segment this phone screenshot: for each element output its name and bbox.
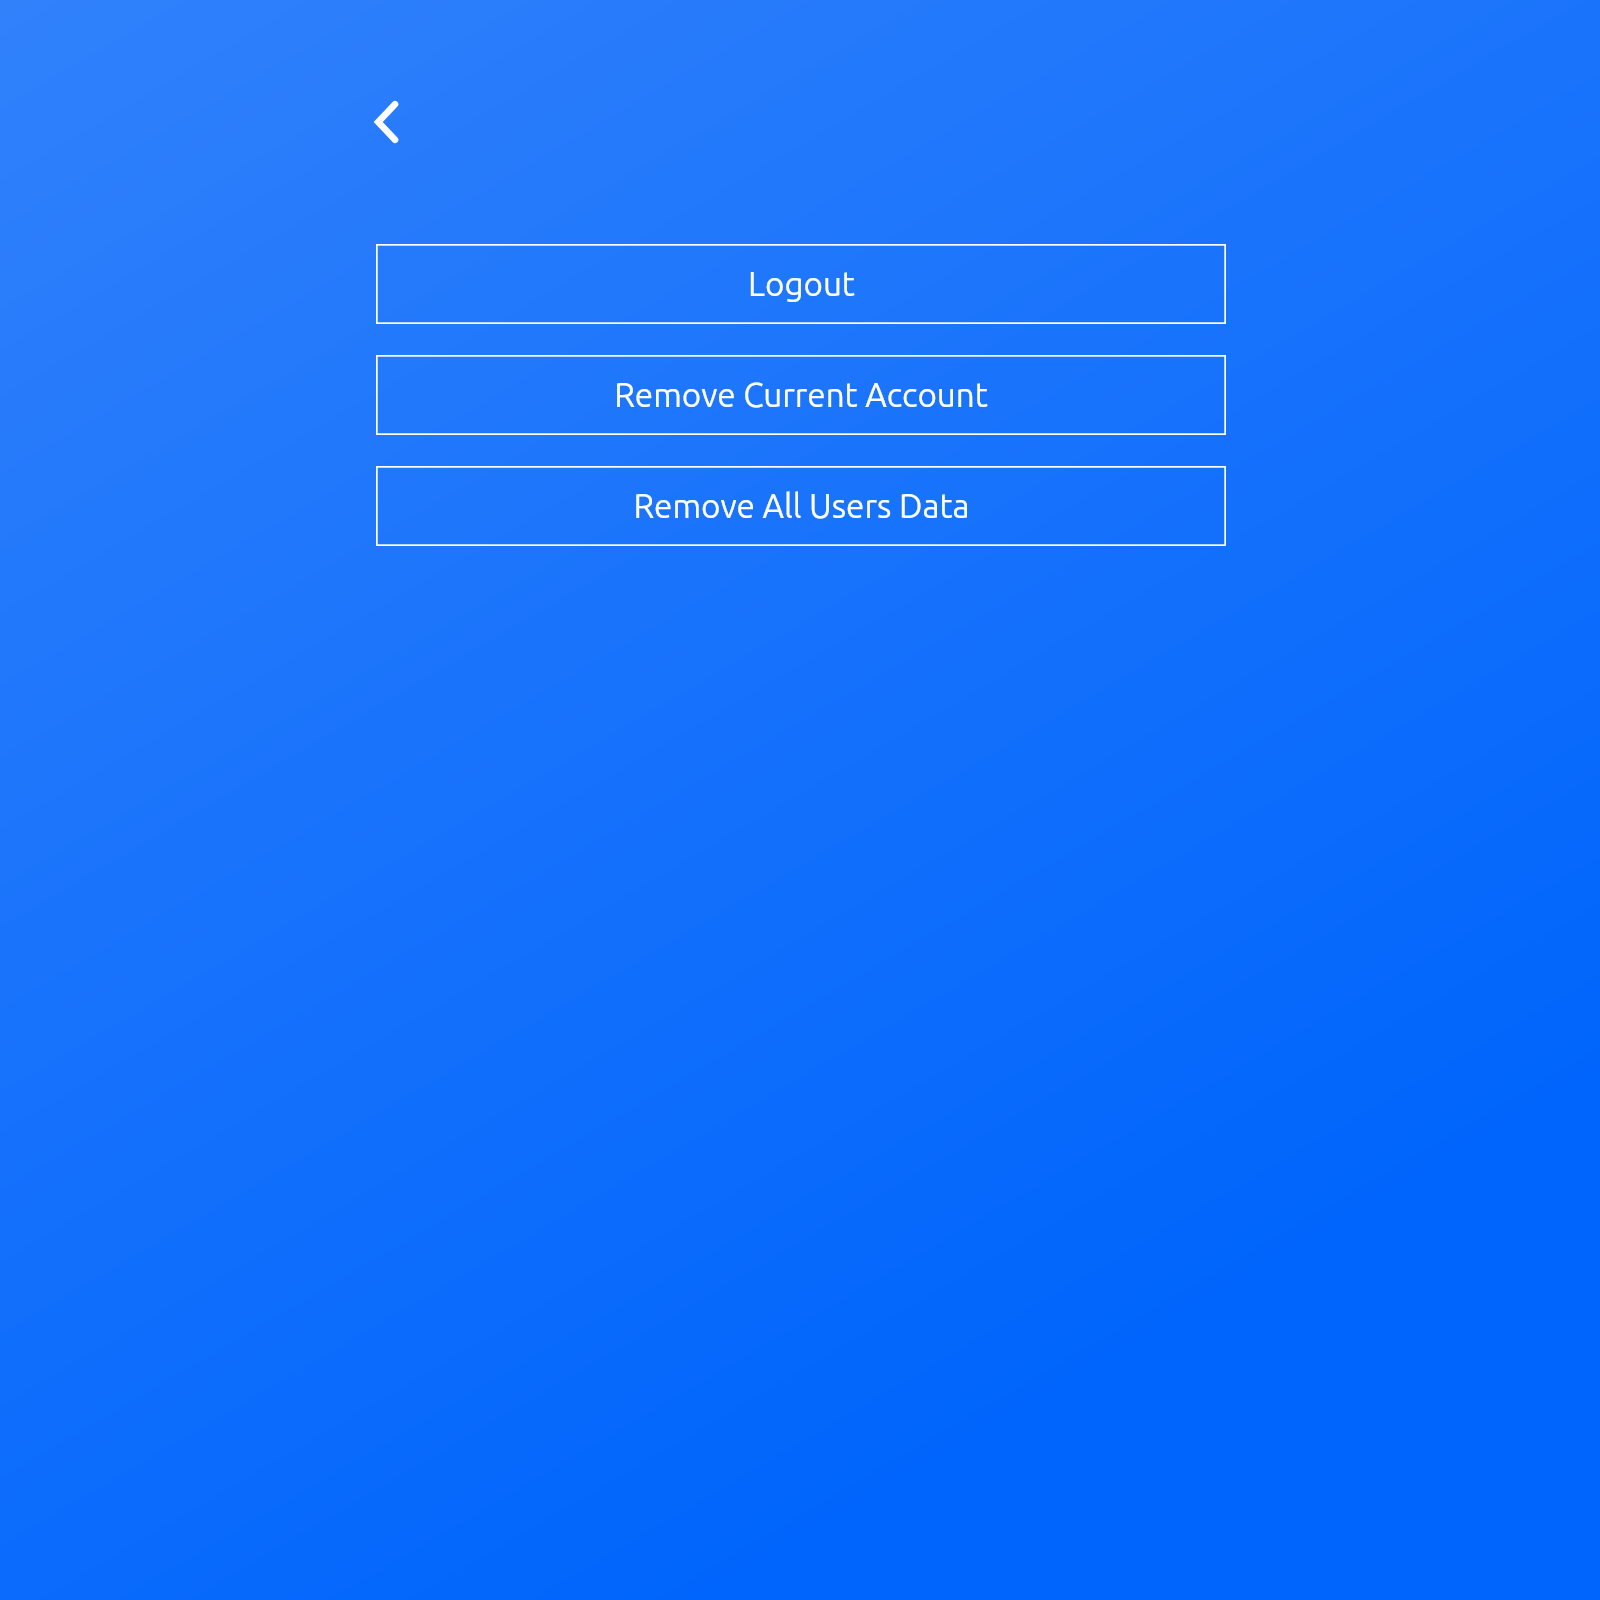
staticText: Remove All Users Data	[633, 487, 970, 524]
button[interactable]: Remove Current Account	[376, 355, 1226, 435]
button[interactable]: Back	[355, 84, 419, 148]
staticText: Logout	[748, 265, 855, 302]
button[interactable]: Remove All Users Data	[376, 466, 1226, 546]
button[interactable]: Logout	[376, 244, 1226, 324]
staticText: Remove Current Account	[614, 376, 988, 413]
